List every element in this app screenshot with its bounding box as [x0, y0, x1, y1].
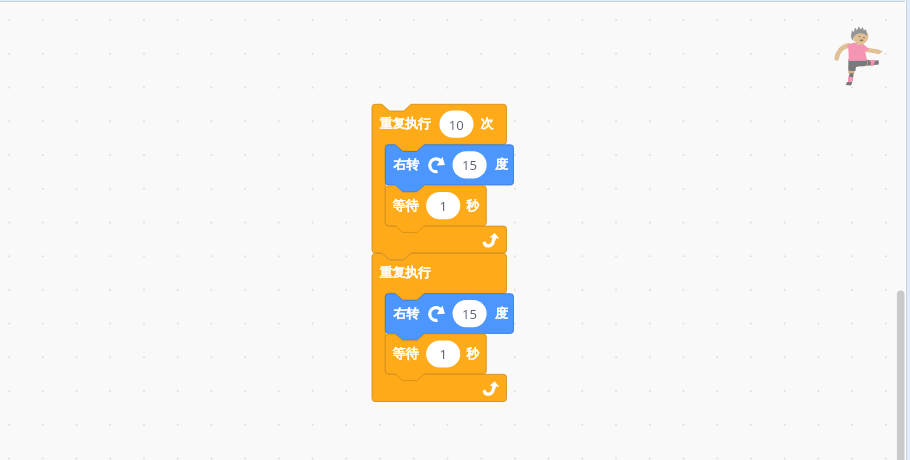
other: Sprite preview — [0, 0, 910, 460]
button[interactable]: 右转 15 度 — [385, 294, 514, 334]
button[interactable]: 重复执行 循环结束 — [372, 373, 506, 401]
button[interactable]: 重复执行 循环结束 — [372, 225, 506, 252]
button[interactable]: 右转 15 度 — [385, 144, 514, 184]
button[interactable]: 等待 1 秒 — [385, 185, 486, 225]
other: Scroll workspace — [0, 0, 910, 460]
button[interactable]: 重复执行 10 次 — [372, 104, 506, 144]
button[interactable]: 重复执行 — [372, 252, 506, 293]
button[interactable]: 等待 1 秒 — [385, 334, 486, 373]
